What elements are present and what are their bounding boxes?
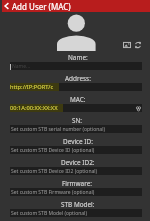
staticText: MAC:	[70, 95, 86, 104]
button[interactable]: Name...	[10, 62, 142, 70]
staticText: Set custom STB Firmware (optional)	[11, 189, 95, 196]
staticText: 00:1A:00:XX:XX:XX	[10, 104, 58, 112]
button[interactable]: Set custom STB Device ID2 (optional)	[10, 167, 142, 175]
button[interactable]: Choose image	[121, 39, 132, 50]
button[interactable]: Set custom STB Model (optional)	[10, 209, 142, 217]
staticText: http://IP:PORT/c	[10, 83, 54, 91]
staticText: STB Model:	[61, 200, 95, 209]
staticText: Firmware:	[62, 179, 93, 188]
staticText: Name...	[12, 63, 31, 70]
staticText: Set custom STB Device ID (optional)	[11, 147, 95, 154]
staticText: Add User (MAC)	[12, 1, 71, 12]
staticText: Device ID2:	[61, 158, 95, 167]
button[interactable]: Refresh	[132, 39, 143, 50]
staticText: Set custom STB Device ID2 (optional)	[11, 168, 98, 175]
button[interactable]: Set custom STB Device ID (optional)	[10, 146, 142, 154]
button[interactable]: Generate MAC	[135, 105, 141, 111]
staticText: Name:	[68, 53, 88, 62]
button[interactable]: http://IP:PORT/c	[10, 83, 142, 91]
button[interactable]: Set custom STB Firmware (optional)	[10, 188, 142, 196]
staticText: SN:	[72, 116, 83, 125]
staticText: Set custom STB Model (optional)	[11, 210, 87, 217]
button[interactable]: Back	[2, 0, 12, 12]
button[interactable]: 00:1A:00:XX:XX:XX	[10, 104, 142, 112]
staticText: Set custom STB serial number (optional)	[11, 126, 105, 133]
staticText: Address:	[65, 74, 91, 83]
button[interactable]: Set custom STB serial number (optional)	[10, 125, 142, 133]
staticText: Device ID:	[63, 137, 93, 146]
